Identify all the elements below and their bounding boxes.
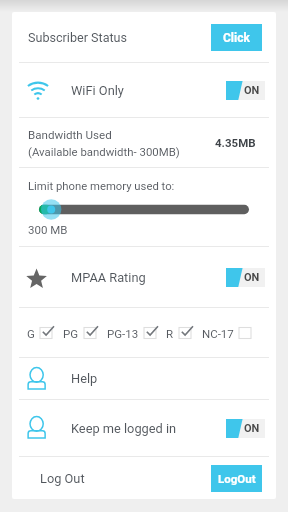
- button[interactable]: LogOut: [211, 465, 262, 492]
- button[interactable]: Toggle on: [226, 81, 265, 100]
- staticText: LogOut: [218, 472, 256, 485]
- staticText: 4.35MB: [215, 136, 256, 149]
- button[interactable]: Toggle on: [226, 419, 265, 438]
- button[interactable]: Toggle on: [226, 268, 265, 287]
- staticText: 300 MB: [28, 223, 68, 236]
- staticText: ON: [244, 84, 260, 97]
- staticText: ON: [244, 271, 260, 284]
- button[interactable]: Click: [211, 24, 262, 51]
- staticText: Keep me logged in: [71, 421, 177, 436]
- staticText: Log Out: [40, 471, 85, 486]
- button[interactable]: PG: [63, 326, 99, 340]
- staticText: NC-17: [202, 327, 234, 340]
- staticText: Bandwidth Used: [28, 128, 112, 142]
- staticText: (Available bandwidth- 300MB): [28, 145, 180, 158]
- button[interactable]: R: [166, 326, 194, 340]
- staticText: WiFi Only: [71, 83, 124, 98]
- staticText: Subscriber Status: [28, 30, 128, 45]
- button[interactable]: PG-13: [107, 326, 159, 340]
- button[interactable]: NC-17: [202, 326, 254, 340]
- staticText: ON: [244, 422, 260, 435]
- staticText: Limit phone memory used to:: [28, 180, 175, 193]
- staticText: MPAA Rating: [71, 270, 146, 285]
- staticText: PG: [63, 327, 79, 340]
- staticText: R: [166, 327, 174, 340]
- staticText: Help: [71, 371, 98, 386]
- staticText: PG-13: [107, 327, 139, 340]
- button[interactable]: Help: [25, 358, 265, 399]
- staticText: Click: [223, 31, 250, 45]
- staticText: G: [27, 327, 35, 340]
- button[interactable]: G: [27, 326, 55, 340]
